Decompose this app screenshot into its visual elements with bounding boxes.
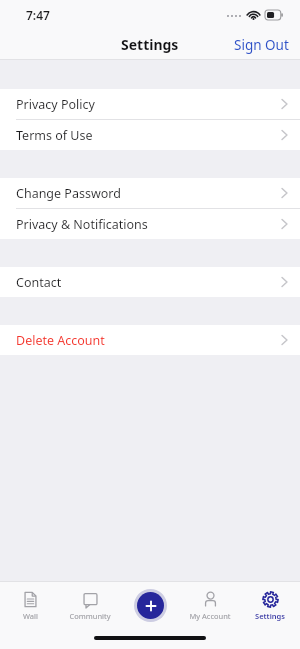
staticText: Privacy Policy xyxy=(16,96,95,113)
button[interactable]: Contact xyxy=(0,267,300,297)
staticText: Change Password xyxy=(16,185,121,202)
button[interactable]: Privacy Policy xyxy=(0,89,300,119)
button[interactable]: Settings xyxy=(240,581,300,630)
staticText: Privacy & Notifications xyxy=(16,216,148,233)
button[interactable]: Change Password xyxy=(0,178,300,208)
staticText: Sign Out xyxy=(234,36,289,54)
staticText: Terms of Use xyxy=(16,127,93,144)
staticText: Contact xyxy=(16,274,62,291)
staticText: 7:47 xyxy=(26,7,50,23)
button[interactable]: Privacy & Notifications xyxy=(0,209,300,239)
staticText: Delete Account xyxy=(16,332,105,349)
staticText: Wall xyxy=(23,611,38,621)
button[interactable]: Sign Out xyxy=(223,32,300,58)
button[interactable]: Create xyxy=(134,589,167,622)
button[interactable]: Wall xyxy=(0,581,60,630)
button[interactable]: My Account xyxy=(180,581,240,630)
button[interactable]: Community xyxy=(60,581,120,630)
button[interactable]: Delete Account xyxy=(0,325,300,355)
button[interactable]: Terms of Use xyxy=(0,120,300,150)
staticText: Settings xyxy=(121,35,179,54)
staticText: Settings xyxy=(255,611,285,621)
staticText: Community xyxy=(69,611,111,621)
staticText: My Account xyxy=(189,611,231,621)
